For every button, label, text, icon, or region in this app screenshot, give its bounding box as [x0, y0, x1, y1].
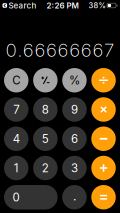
- button[interactable]: 7: [4, 97, 28, 122]
- button[interactable]: 1: [4, 156, 28, 180]
- button[interactable]: 9: [62, 97, 87, 122]
- staticText: 2: [42, 161, 49, 175]
- button[interactable]: Add: [91, 156, 116, 180]
- staticText: 9: [71, 103, 78, 116]
- staticText: 4: [13, 132, 20, 146]
- button[interactable]: .: [62, 185, 87, 209]
- staticText: .: [73, 189, 76, 203]
- staticText: 0: [12, 190, 19, 204]
- button[interactable]: 4: [4, 126, 28, 151]
- button[interactable]: %: [62, 68, 87, 92]
- button[interactable]: Toggle sign: [33, 68, 58, 92]
- staticText: 2:26 PM: [46, 1, 78, 10]
- staticText: C: [12, 73, 20, 87]
- staticText: 1: [14, 161, 19, 175]
- staticText: Search: [8, 1, 36, 10]
- button[interactable]: Multiply: [91, 97, 116, 122]
- staticText: 0.66666667: [6, 39, 114, 61]
- button[interactable]: 2: [33, 156, 58, 180]
- staticText: ‹: [3, 1, 6, 10]
- staticText: 6: [71, 132, 78, 146]
- button[interactable]: 8: [33, 97, 58, 122]
- button[interactable]: Subtract: [91, 126, 116, 151]
- staticText: 38%: [88, 1, 105, 10]
- button[interactable]: 0: [4, 185, 58, 209]
- button[interactable]: 3: [62, 156, 87, 180]
- button[interactable]: Equals: [91, 185, 116, 209]
- button[interactable]: Divide: [91, 68, 116, 92]
- button[interactable]: 5: [33, 126, 58, 151]
- staticText: %: [69, 73, 80, 87]
- button[interactable]: C: [4, 68, 28, 92]
- staticText: 5: [42, 132, 49, 146]
- staticText: 3: [71, 161, 78, 175]
- button[interactable]: 6: [62, 126, 87, 151]
- staticText: 7: [13, 103, 19, 116]
- staticText: 8: [42, 103, 49, 116]
